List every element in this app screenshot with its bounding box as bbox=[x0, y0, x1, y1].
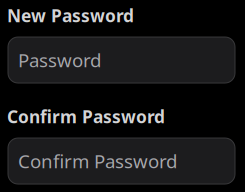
button[interactable]: Confirm Password bbox=[8, 138, 235, 184]
button[interactable]: Password bbox=[8, 37, 235, 83]
staticText: Confirm Password bbox=[7, 105, 165, 128]
staticText: New Password bbox=[7, 4, 134, 27]
staticText: Password bbox=[18, 48, 101, 72]
staticText: Confirm Password bbox=[18, 149, 177, 173]
